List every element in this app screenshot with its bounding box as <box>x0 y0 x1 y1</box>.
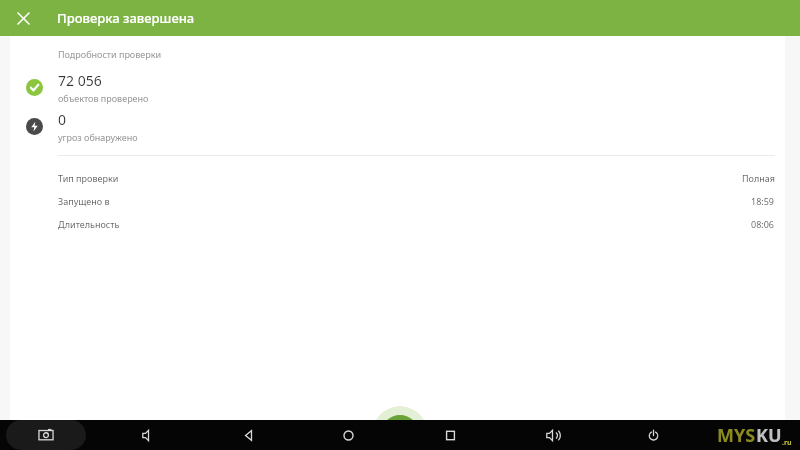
button[interactable]: Recents <box>435 420 465 450</box>
staticText: 0 <box>58 110 67 129</box>
staticText: 72 056 <box>58 71 102 90</box>
button[interactable]: Done <box>372 406 428 450</box>
staticText: Полная <box>742 172 775 184</box>
button[interactable]: Power <box>638 420 668 450</box>
staticText: Подробности проверки <box>58 48 162 60</box>
staticText: угроз обнаружено <box>58 131 138 143</box>
button[interactable]: Home <box>333 420 363 450</box>
button[interactable]: Close <box>10 5 36 31</box>
staticText: 18:59 <box>751 195 775 207</box>
staticText: MYS <box>717 423 756 448</box>
staticText: объектов проверено <box>58 92 149 104</box>
staticText: 08:06 <box>751 218 775 230</box>
button[interactable]: Screenshot <box>6 420 86 450</box>
button[interactable]: Volume down <box>133 420 163 450</box>
button[interactable]: Длительность <box>10 212 785 235</box>
staticText: .ru <box>782 438 792 448</box>
button[interactable]: Back <box>233 420 263 450</box>
button[interactable]: Запущено в <box>10 189 785 212</box>
staticText: KU <box>756 423 782 448</box>
staticText: Проверка завершена <box>57 9 195 27</box>
button[interactable]: Тип проверки <box>10 166 785 189</box>
staticText: Запущено в <box>58 195 110 207</box>
button[interactable]: Volume up <box>537 420 567 450</box>
staticText: Тип проверки <box>58 172 119 184</box>
staticText: Длительность <box>58 218 120 230</box>
